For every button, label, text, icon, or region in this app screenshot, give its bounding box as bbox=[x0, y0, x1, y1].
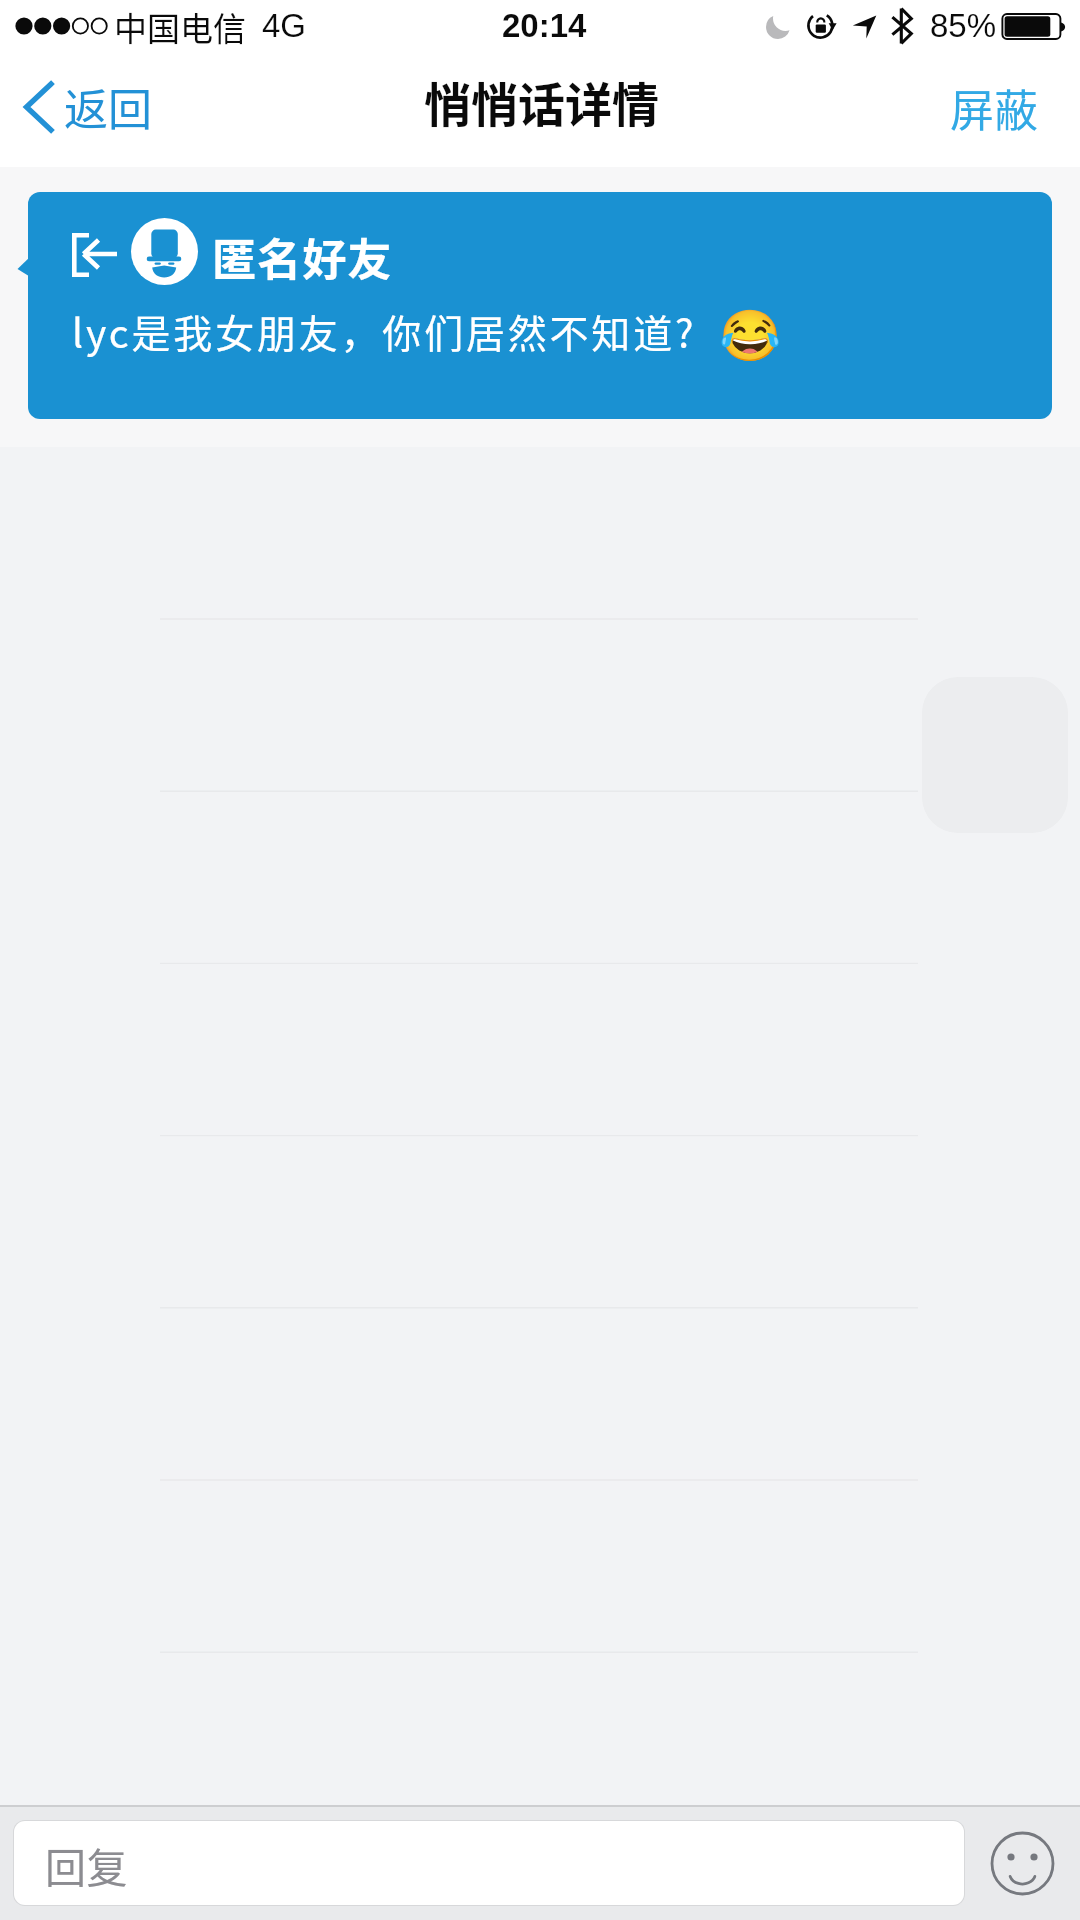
button[interactable]: 回复 bbox=[13, 1820, 965, 1906]
staticText: 悄悄话详情 bbox=[424, 67, 659, 135]
staticText: 屏蔽 bbox=[950, 76, 1038, 140]
staticText: 匿名好友 bbox=[212, 225, 393, 289]
staticText: 85% bbox=[930, 7, 997, 44]
staticText: lyc是我女朋友，你们居然不知道? bbox=[72, 303, 697, 359]
staticText: 20:14 bbox=[502, 7, 587, 44]
button[interactable]: Emoji bbox=[988, 1829, 1057, 1898]
staticText: 😂 bbox=[719, 307, 782, 366]
button[interactable]: 返回 bbox=[6, 66, 166, 156]
staticText: 返回 bbox=[64, 75, 152, 139]
button[interactable]: 屏蔽 bbox=[928, 66, 1058, 156]
staticText: 中国电信 bbox=[114, 3, 246, 51]
staticText: 4G bbox=[262, 7, 307, 44]
staticText: 回复 bbox=[45, 1835, 128, 1894]
button[interactable]: 匿名好友 bbox=[28, 192, 1052, 419]
